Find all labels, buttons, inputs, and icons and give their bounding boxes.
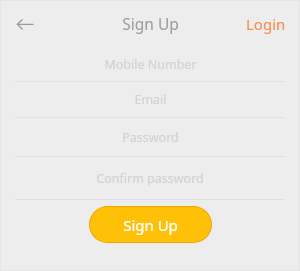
button[interactable]: Confirm password	[0, 157, 300, 199]
staticText: Sign Up	[123, 215, 178, 235]
staticText: Login	[246, 14, 286, 34]
staticText: Confirm password	[96, 170, 204, 187]
staticText: Sign Up	[122, 13, 179, 34]
button[interactable]: Sign Up	[90, 207, 211, 242]
button[interactable]: Login	[232, 6, 300, 42]
button[interactable]: Back	[8, 7, 42, 41]
staticText: Password	[122, 129, 179, 146]
staticText: Mobile Number	[104, 56, 197, 73]
button[interactable]: Mobile Number	[0, 47, 300, 81]
staticText: Email	[134, 91, 167, 108]
button[interactable]: Password	[0, 118, 300, 156]
